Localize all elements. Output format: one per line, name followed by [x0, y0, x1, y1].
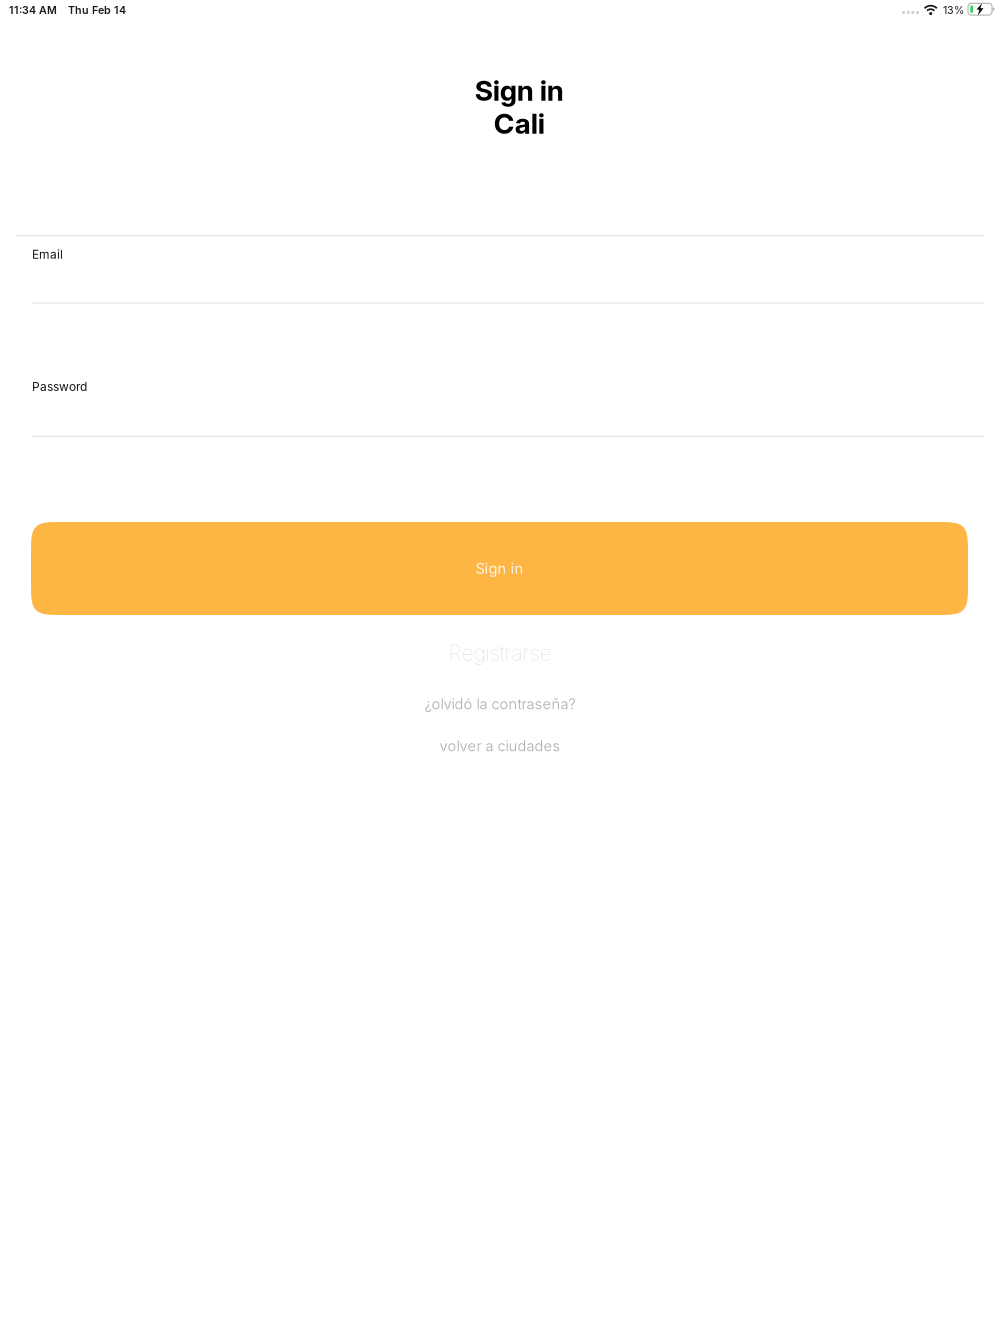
staticText: Sign in	[475, 560, 523, 577]
staticText: ¿olvidó la contraseña?	[424, 695, 575, 713]
button[interactable]: ¿olvidó la contraseña?	[0, 690, 1000, 718]
staticText: volver a ciudades	[439, 737, 560, 755]
staticText: Registrarse	[448, 640, 551, 666]
staticText: 11:34 AM	[9, 4, 57, 16]
staticText: Password	[32, 380, 87, 394]
button[interactable]: volver a ciudades	[0, 732, 1000, 760]
staticText: 13%	[943, 4, 964, 16]
button[interactable]: Sign in	[31, 522, 968, 615]
staticText: Email	[32, 247, 63, 261]
staticText: Thu Feb 14	[68, 4, 126, 16]
staticText: Sign in Cali	[474, 74, 563, 140]
